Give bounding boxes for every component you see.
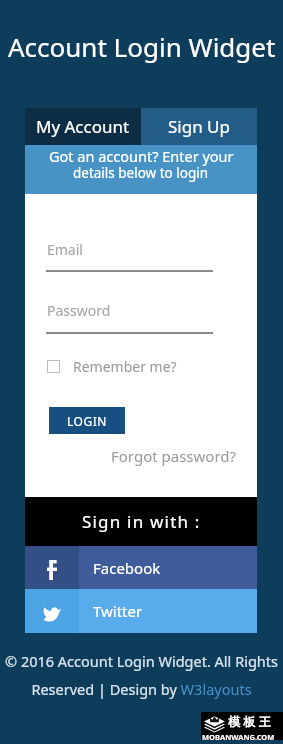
button[interactable]: LOGIN xyxy=(49,407,125,434)
button[interactable]: My Account xyxy=(25,108,141,145)
button[interactable]: Remember me? xyxy=(47,357,177,376)
staticText: Password xyxy=(47,301,111,320)
staticText: 模板王 xyxy=(228,714,275,729)
staticText: Sign Up xyxy=(168,115,230,138)
staticText: Account Login Widget xyxy=(8,29,276,64)
button[interactable]: Sign Up xyxy=(141,108,257,145)
button[interactable]: Twitter xyxy=(25,589,257,633)
staticText: © 2016 Account Login Widget. All Rights … xyxy=(5,651,278,700)
staticText: My Account xyxy=(36,115,130,138)
staticText: MOBANWANG.COM xyxy=(202,732,275,742)
staticText: Sign in with : xyxy=(82,510,201,533)
staticText: Email xyxy=(47,240,83,259)
button[interactable]: 模板王 xyxy=(201,712,283,740)
staticText: Forgot password? xyxy=(111,446,237,466)
staticText: LOGIN xyxy=(67,413,107,429)
staticText: Got an account? Enter your xyxy=(49,146,234,166)
staticText: Facebook xyxy=(93,558,161,578)
button[interactable]: Facebook xyxy=(25,546,257,589)
staticText: Remember me? xyxy=(73,357,177,376)
staticText: Twitter xyxy=(93,601,143,621)
staticText: details below to login xyxy=(73,164,209,182)
button[interactable]: Forgot password? xyxy=(111,446,237,466)
